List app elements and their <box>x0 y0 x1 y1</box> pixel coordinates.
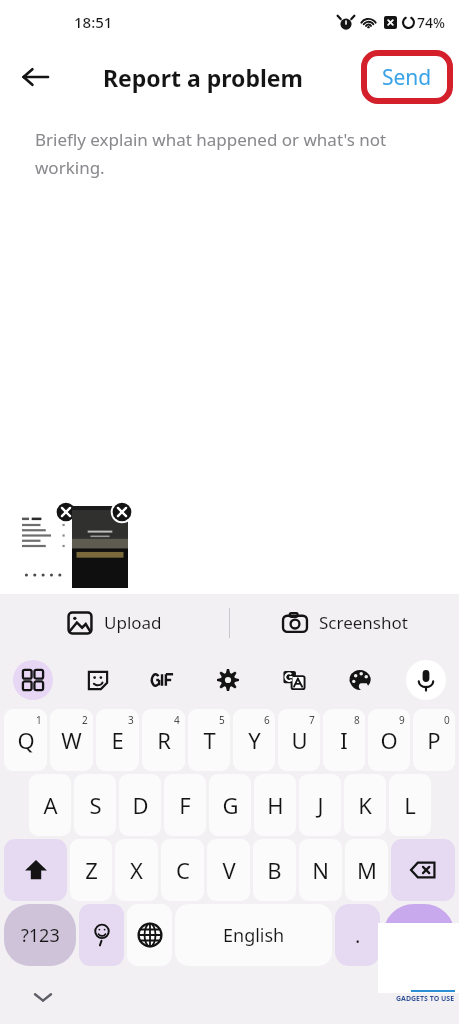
staticText: P <box>427 725 441 755</box>
staticText: Screenshot <box>319 611 408 634</box>
button[interactable]: R <box>142 709 185 771</box>
staticText: 8 <box>354 713 360 727</box>
staticText: 6 <box>264 713 270 727</box>
button[interactable]: K <box>344 774 386 836</box>
button[interactable]: Emoji <box>79 904 124 966</box>
staticText: 2 <box>82 713 88 727</box>
staticText: T <box>203 725 216 755</box>
button[interactable]: ?123 <box>4 904 76 966</box>
staticText: Send <box>382 63 432 92</box>
button[interactable] <box>16 506 72 588</box>
staticText: K <box>358 790 372 820</box>
staticText: 3 <box>128 713 134 727</box>
button[interactable]: V <box>207 839 250 901</box>
button[interactable]: E <box>96 709 139 771</box>
button[interactable]: J <box>299 774 341 836</box>
button[interactable]: D <box>119 774 161 836</box>
button[interactable]: Back <box>12 54 58 100</box>
button[interactable]: G <box>209 774 251 836</box>
button[interactable]: Change language <box>127 904 172 966</box>
button[interactable]: H <box>254 774 296 836</box>
button[interactable]: Send <box>382 63 432 92</box>
staticText: V <box>222 855 236 885</box>
button[interactable]: B <box>253 839 296 901</box>
staticText: 1 <box>36 713 42 727</box>
staticText: I <box>340 725 348 755</box>
button[interactable]: Translate <box>261 651 327 709</box>
staticText: G <box>222 790 239 820</box>
staticText: 9 <box>399 713 405 727</box>
button[interactable]: Backspace <box>391 839 455 901</box>
staticText: English <box>223 923 285 948</box>
button[interactable]: Keyboard modes <box>0 651 65 709</box>
staticText: L <box>404 790 416 820</box>
button[interactable]: Voice input <box>393 651 459 709</box>
staticText: M <box>357 855 377 885</box>
staticText: Q <box>17 725 35 755</box>
button[interactable]: Upload <box>0 594 229 651</box>
staticText: Report a problem <box>103 62 304 93</box>
button[interactable]: Screenshot <box>230 594 459 651</box>
staticText: R <box>157 725 171 755</box>
button[interactable]: S <box>74 774 116 836</box>
staticText: GADGETS TO USE <box>396 994 455 1004</box>
staticText: A <box>43 790 58 820</box>
staticText: F <box>179 790 191 820</box>
button[interactable]: Remove attachment <box>110 500 134 524</box>
staticText: D <box>132 790 149 820</box>
staticText: C <box>176 855 190 885</box>
button[interactable]: Themes <box>327 651 393 709</box>
staticText: 7 <box>309 713 315 727</box>
button[interactable]: Z <box>70 839 112 901</box>
button[interactable]: GIF <box>130 651 195 709</box>
staticText: J <box>317 790 324 820</box>
staticText: O <box>380 725 398 755</box>
button[interactable]: A <box>29 774 71 836</box>
button[interactable]: O <box>368 709 410 771</box>
button[interactable]: L <box>389 774 431 836</box>
staticText: U <box>291 725 308 755</box>
button[interactable]: Stickers <box>65 651 130 709</box>
button[interactable]: Hide keyboard <box>26 980 60 1014</box>
button[interactable]: . <box>335 904 380 966</box>
button[interactable]: Y <box>233 709 275 771</box>
button[interactable]: C <box>161 839 204 901</box>
button[interactable]: Remove attachment <box>54 500 78 524</box>
button[interactable]: English <box>175 904 332 966</box>
staticText: . <box>355 922 361 949</box>
button[interactable]: Enter <box>383 904 455 966</box>
staticText: E <box>111 725 124 755</box>
staticText: 0 <box>444 713 450 727</box>
button[interactable]: N <box>299 839 342 901</box>
button[interactable] <box>72 506 128 588</box>
staticText: Z <box>85 855 98 885</box>
button[interactable]: Shift <box>4 839 67 901</box>
button[interactable]: I <box>323 709 365 771</box>
button[interactable]: T <box>188 709 230 771</box>
staticText: Upload <box>104 611 162 634</box>
button[interactable]: Settings <box>195 651 261 709</box>
button[interactable]: M <box>345 839 388 901</box>
button[interactable]: P <box>413 709 455 771</box>
staticText: H <box>267 790 284 820</box>
staticText: N <box>312 855 329 885</box>
staticText: Briefly explain what happened or what's … <box>35 128 419 179</box>
button[interactable]: X <box>115 839 158 901</box>
button[interactable]: Q <box>4 709 47 771</box>
staticText: Y <box>248 725 261 755</box>
staticText: W <box>61 725 82 755</box>
staticText: 4 <box>174 713 180 727</box>
staticText: ?123 <box>21 923 60 948</box>
staticText: 5 <box>219 713 225 727</box>
button[interactable]: W <box>50 709 93 771</box>
staticText: S <box>89 790 102 820</box>
staticText: 18:51 <box>74 12 113 32</box>
staticText: 74% <box>417 13 445 32</box>
button[interactable]: F <box>164 774 206 836</box>
staticText: X <box>130 855 143 885</box>
staticText: B <box>267 855 282 885</box>
button[interactable]: U <box>278 709 320 771</box>
